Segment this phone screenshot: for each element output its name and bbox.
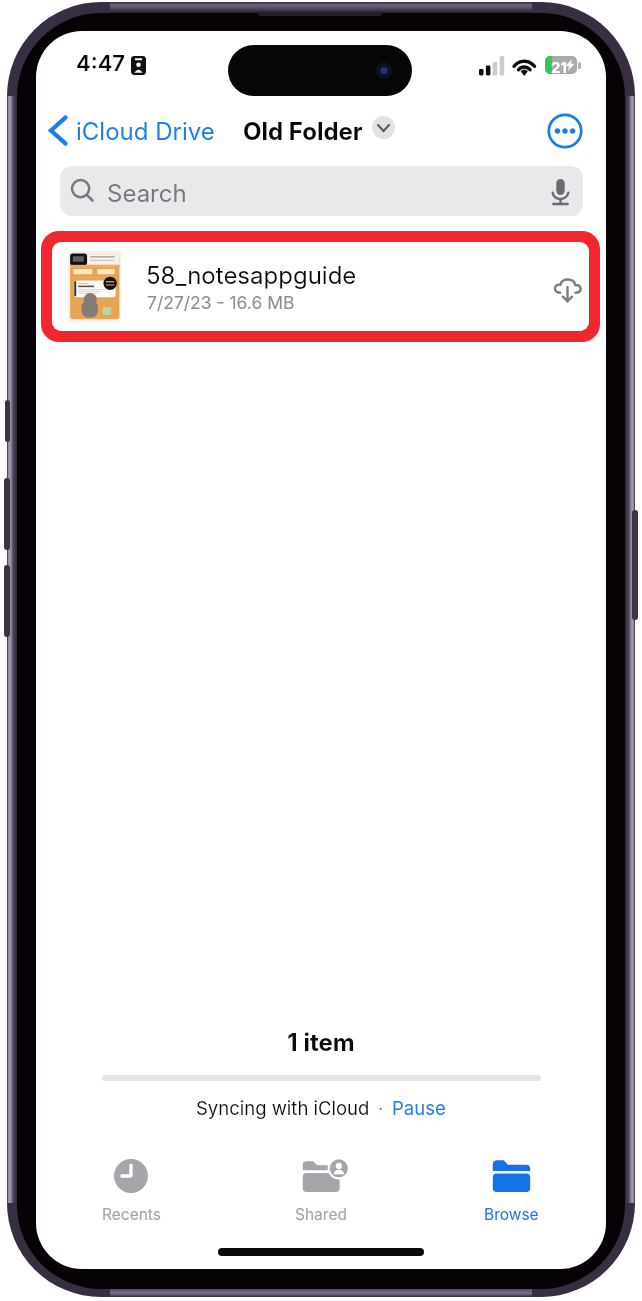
staticText: 7/27/23 - 16.6 MB	[147, 292, 295, 313]
staticText: Browse	[484, 1205, 539, 1224]
staticText: 4:47	[76, 50, 125, 77]
staticText: Recents	[102, 1205, 161, 1224]
button[interactable]: Search	[60, 166, 583, 216]
button[interactable]: iCloud Drive	[42, 111, 232, 155]
staticText: 1 item	[36, 1028, 606, 1057]
staticText: iCloud Drive	[76, 117, 215, 146]
staticText: Old Folder	[243, 117, 363, 146]
staticText: Shared	[295, 1205, 347, 1224]
button[interactable]	[41, 231, 600, 342]
staticText: 21	[551, 58, 567, 76]
button[interactable]: Pause	[392, 1097, 446, 1119]
button[interactable]: More options	[545, 111, 585, 151]
staticText: Syncing with iCloud	[196, 1097, 370, 1119]
button[interactable]: Browse	[475, 1158, 547, 1232]
staticText: Search	[107, 179, 187, 208]
button[interactable]: Voice search	[544, 174, 574, 210]
staticText: ·	[370, 1099, 392, 1117]
button[interactable]: Recents	[95, 1158, 167, 1232]
button[interactable]: Folder options	[372, 116, 395, 139]
button[interactable]: Download	[552, 276, 583, 304]
button[interactable]: Shared	[285, 1158, 357, 1232]
staticText: 58_notesappguide	[146, 261, 357, 290]
